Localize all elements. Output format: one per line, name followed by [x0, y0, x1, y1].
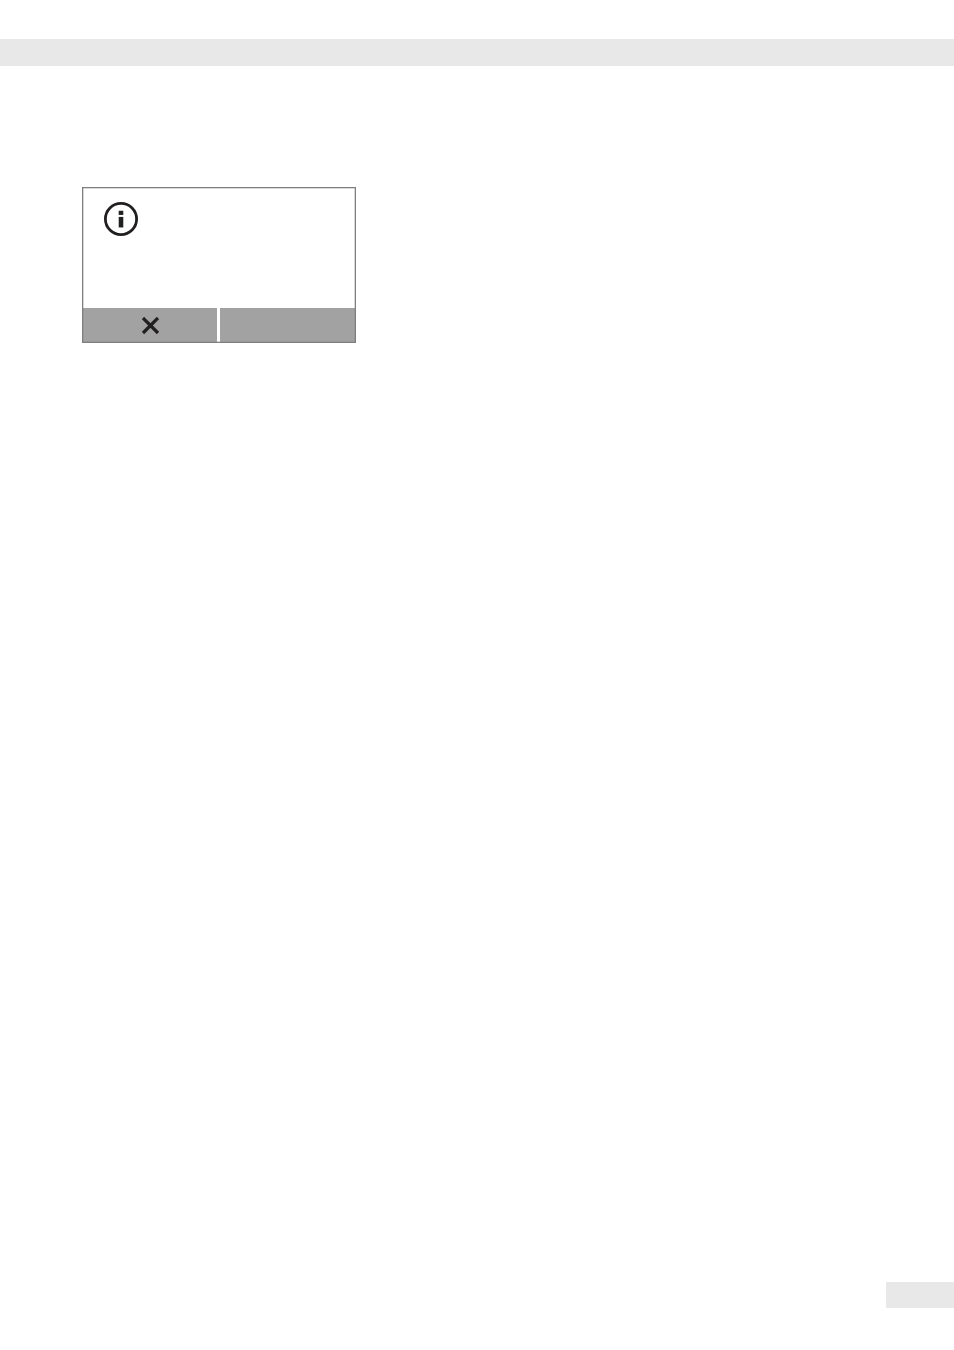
other: Information	[104, 202, 138, 236]
button[interactable]: Dismiss	[83, 308, 217, 342]
